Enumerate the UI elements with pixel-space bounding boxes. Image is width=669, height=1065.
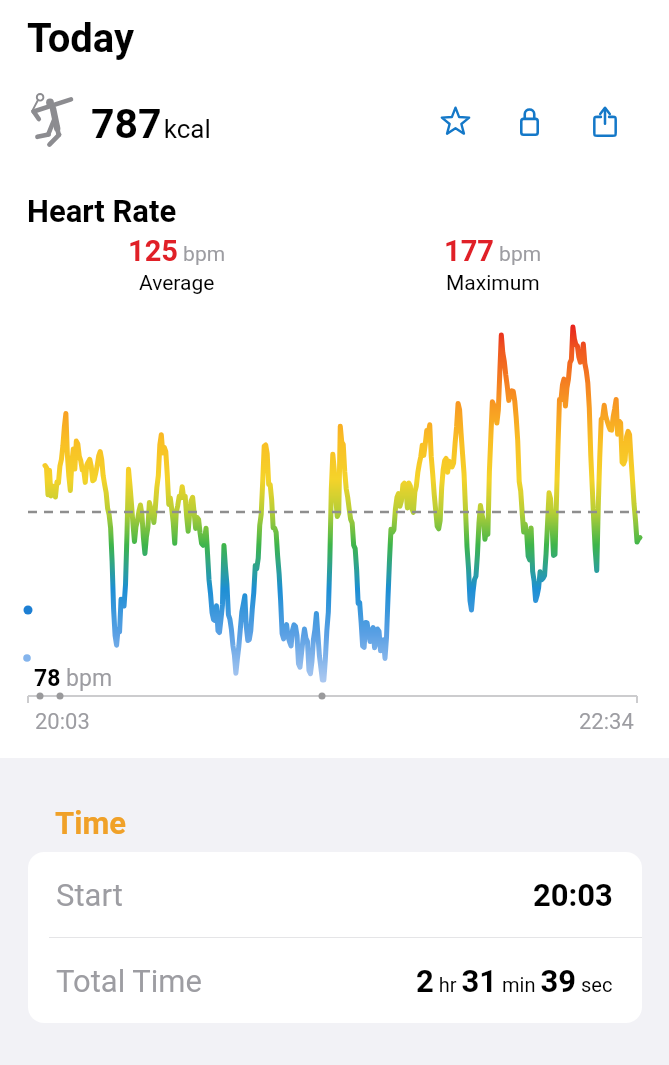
button[interactable]: Lock <box>503 95 555 147</box>
staticText: 78 bpm <box>34 665 113 692</box>
staticText: 177 bpm <box>444 234 542 268</box>
staticText: 20:03 <box>35 709 90 735</box>
button[interactable]: Start <box>28 852 642 937</box>
button[interactable]: Total Time <box>28 938 642 1023</box>
staticText: Today <box>27 15 135 62</box>
button[interactable]: Share <box>579 95 631 147</box>
button[interactable]: Favourite <box>429 95 481 147</box>
staticText: 787 kcal <box>91 100 211 148</box>
staticText: Average <box>139 271 215 296</box>
staticText: Time <box>55 805 126 841</box>
staticText: 22:34 <box>579 709 634 735</box>
staticText: 2 hr 31 min 39 sec <box>416 963 613 999</box>
staticText: Total Time <box>56 963 202 999</box>
staticText: Start <box>56 877 123 913</box>
staticText: 125 bpm <box>128 234 226 268</box>
staticText: 20:03 <box>533 877 613 913</box>
staticText: Maximum <box>446 271 540 296</box>
staticText: Heart Rate <box>27 193 177 229</box>
